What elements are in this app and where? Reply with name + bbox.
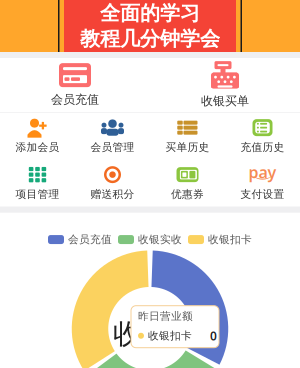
button[interactable]: 优惠券 — [150, 160, 225, 207]
staticText: 会员管理 — [90, 141, 134, 154]
button[interactable]: 收银买单 — [150, 58, 300, 112]
button[interactable]: 买单历史 — [150, 113, 225, 160]
staticText: 教程几分钟学会 — [80, 26, 220, 51]
staticText: 会员充值 — [68, 233, 112, 246]
button[interactable]: 项目管理 — [0, 160, 75, 207]
button[interactable]: 充值历史 — [225, 113, 300, 160]
staticText: 优惠券 — [171, 188, 204, 201]
staticText: 赠送积分 — [90, 188, 134, 201]
staticText: 支付设置 — [240, 188, 284, 201]
button[interactable]: 会员充值 — [0, 58, 150, 112]
staticText: 收 — [113, 317, 141, 351]
staticText: 添加会员 — [15, 141, 59, 154]
staticText: 会员充值 — [51, 92, 99, 107]
staticText: 收银实收 — [138, 233, 182, 246]
staticText: 0 — [210, 328, 217, 344]
staticText: 收银扣卡 — [148, 329, 192, 342]
staticText: 收银买单 — [201, 94, 249, 108]
staticText: pay — [248, 161, 276, 183]
staticText: 买单历史 — [165, 141, 209, 154]
button[interactable]: 添加会员 — [0, 113, 75, 160]
staticText: 昨日营业额 — [138, 310, 193, 323]
staticText: 项目管理 — [15, 188, 59, 201]
button[interactable]: pay — [225, 160, 300, 207]
button[interactable]: 会员管理 — [75, 113, 150, 160]
staticText: 充值历史 — [240, 141, 284, 154]
staticText: 全面的学习 — [100, 1, 200, 25]
button[interactable]: 赠送积分 — [75, 160, 150, 207]
staticText: 收银扣卡 — [208, 233, 252, 246]
